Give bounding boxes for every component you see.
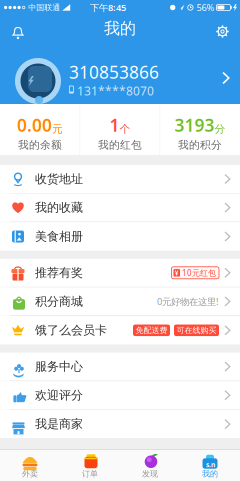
- button[interactable]: 发现: [120, 450, 180, 481]
- staticText: 服务中心: [35, 359, 83, 374]
- staticText: 饿了么会员卡: [35, 323, 107, 338]
- staticText: 我的: [104, 19, 136, 38]
- button[interactable]: 美食相册: [0, 222, 240, 251]
- staticText: 我是商家: [35, 417, 83, 431]
- button[interactable]: 订单: [60, 450, 120, 481]
- staticText: 我的: [202, 469, 218, 479]
- button[interactable]: 外卖: [0, 450, 60, 481]
- staticText: 外卖: [22, 469, 38, 479]
- staticText: 310853866: [69, 60, 159, 83]
- button[interactable]: 饿了么会员卡: [0, 316, 240, 345]
- staticText: 发现: [142, 469, 158, 479]
- staticText: 我的收藏: [35, 200, 83, 215]
- staticText: s.n: [206, 460, 215, 469]
- staticText: 可在线购买: [176, 325, 216, 335]
- button[interactable]: 310853866: [0, 42, 240, 104]
- staticText: 我的积分: [178, 138, 222, 152]
- staticText: 131****8070: [77, 83, 154, 99]
- staticText: 3193: [174, 113, 214, 136]
- button[interactable]: s.n: [180, 450, 240, 481]
- staticText: 美食相册: [35, 229, 83, 244]
- button[interactable]: 设置: [216, 19, 240, 38]
- staticText: 中国联通: [28, 3, 60, 12]
- staticText: 我的红包: [98, 138, 142, 152]
- staticText: 0.00: [17, 113, 52, 136]
- staticText: 积分商城: [35, 294, 83, 309]
- button[interactable]: 1: [80, 104, 160, 155]
- button[interactable]: 服务中心: [0, 353, 240, 381]
- button[interactable]: 3193: [160, 104, 240, 155]
- button[interactable]: 收货地址: [0, 165, 240, 193]
- staticText: ¥: [175, 268, 179, 277]
- staticText: 元: [52, 122, 63, 135]
- staticText: 分: [214, 122, 225, 135]
- staticText: 我的余额: [18, 138, 62, 152]
- staticText: 下午8:45: [90, 1, 126, 14]
- staticText: 0元好物在这里!: [157, 295, 219, 308]
- staticText: 订单: [82, 469, 98, 479]
- button[interactable]: 0.00: [0, 104, 80, 155]
- staticText: 个: [119, 122, 130, 135]
- staticText: 10元红包: [182, 267, 216, 278]
- staticText: 免配送费: [135, 325, 167, 335]
- button[interactable]: 欢迎评分: [0, 381, 240, 409]
- button[interactable]: 推荐有奖: [0, 259, 240, 287]
- staticText: 收货地址: [35, 172, 83, 186]
- staticText: 欢迎评分: [35, 388, 83, 402]
- staticText: 56%: [196, 1, 214, 14]
- staticText: 推荐有奖: [35, 265, 83, 280]
- button[interactable]: 积分商城: [0, 287, 240, 315]
- button[interactable]: 我是商家: [0, 410, 240, 438]
- button[interactable]: 通知: [0, 19, 24, 38]
- staticText: 1: [109, 113, 119, 136]
- button[interactable]: 我的收藏: [0, 194, 240, 222]
